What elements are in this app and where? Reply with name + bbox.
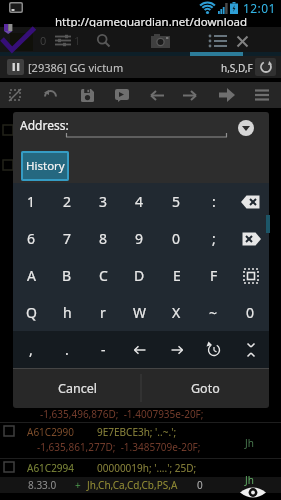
button[interactable] [44,89,57,101]
button[interactable]: ; [195,220,232,257]
button[interactable]: 5 [158,183,195,220]
staticText: -1,635,496,876D; -1.4007935e-20F; [40,407,204,421]
staticText: h,S,D,F [221,61,253,75]
staticText: 9E7EBCE3h; '..~.'; [97,425,177,439]
button[interactable]: , [13,331,49,368]
staticText: [29386] GG victum [28,60,124,75]
staticText: History [26,158,65,174]
staticText: http://gameguardian.net/download [55,14,248,30]
button[interactable] [240,486,266,499]
button[interactable] [158,331,195,368]
staticText: ~ [209,303,218,322]
staticText: F [210,266,218,285]
button[interactable]: h [49,294,85,331]
staticText: 00000019h; '....'; 25D; [97,461,197,475]
staticText: r [100,303,106,322]
staticText: D [134,266,145,285]
staticText: 5 [172,192,181,211]
staticText: 0 [40,33,47,48]
button[interactable] [121,331,158,368]
button[interactable] [232,183,269,220]
button[interactable] [150,90,164,101]
button[interactable] [237,36,248,47]
button[interactable] [115,89,129,102]
button[interactable]: r [85,294,121,331]
button[interactable] [255,89,269,101]
staticText: A [27,266,36,285]
button[interactable]: 7 [49,220,85,257]
button[interactable]: Q [13,294,49,331]
staticText: Cancel [58,380,97,397]
button[interactable]: X [158,294,195,331]
staticText: 3 [99,192,108,211]
button[interactable]: 0 [232,294,269,331]
button[interactable]: 1 [13,183,49,220]
button[interactable] [151,34,170,48]
staticText: . [65,340,69,359]
button[interactable] [9,89,21,101]
button[interactable]: W [121,294,158,331]
staticText: 4 [135,192,144,211]
staticText: A61C2994 [27,461,75,475]
button[interactable] [81,89,94,102]
staticText: Goto [191,380,220,397]
button[interactable] [183,90,197,101]
button[interactable] [7,59,24,75]
staticText: -1,635,861,277D; -1.3485709e-20F; [37,440,201,454]
staticText: 1 [27,192,36,211]
staticText: Jh [245,473,254,487]
staticText: 8.33.0 [28,478,57,492]
button[interactable] [55,34,71,47]
staticText: W [133,303,147,322]
staticText: 9 [135,229,144,248]
staticText: C [99,266,108,285]
staticText: 0 [246,303,255,322]
button[interactable]: Cancel [13,368,141,408]
staticText: h [63,303,72,322]
button[interactable] [232,331,269,368]
staticText: , [29,340,33,359]
button[interactable]: - [85,331,121,368]
staticText: 0 [172,229,181,248]
button[interactable] [238,120,254,136]
button[interactable] [232,220,269,257]
button[interactable] [232,257,269,294]
button[interactable]: 8 [85,220,121,257]
button[interactable]: F [195,257,232,294]
button[interactable]: Goto [141,368,269,408]
staticText: 1 [74,33,81,48]
button[interactable]: ~ [195,294,232,331]
staticText: + [75,478,81,492]
button[interactable]: B [49,257,85,294]
staticText: Q [26,303,37,322]
button[interactable] [97,34,111,48]
button[interactable]: 9 [121,220,158,257]
button[interactable] [255,58,276,76]
button[interactable]: 6 [13,220,49,257]
staticText: Address: [20,117,69,133]
button[interactable] [208,34,228,48]
button[interactable]: D [121,257,158,294]
staticText: B [62,266,72,285]
button[interactable]: 2 [49,183,85,220]
staticText: : [212,192,216,211]
staticText: E [173,266,181,285]
button[interactable]: C [85,257,121,294]
staticText: 12:01 [243,0,276,16]
staticText: 6 [27,229,36,248]
button[interactable]: . [49,331,85,368]
staticText: Jh [245,436,254,450]
button[interactable] [219,88,235,102]
button[interactable]: : [195,183,232,220]
button[interactable]: E [158,257,195,294]
button[interactable]: 4 [121,183,158,220]
button[interactable] [195,331,232,368]
staticText: Jh,Ch,Ca,Cd,Cb,PS,A [87,478,178,492]
button[interactable]: 3 [85,183,121,220]
button[interactable]: History [21,151,69,181]
staticText: 0 [197,478,203,492]
button[interactable]: A [13,257,49,294]
staticText: A61C2990 [27,425,75,439]
button[interactable]: 0 [158,220,195,257]
staticText: 7 [63,229,72,248]
